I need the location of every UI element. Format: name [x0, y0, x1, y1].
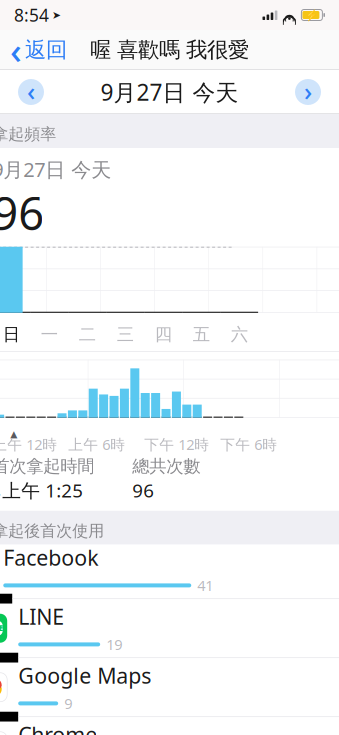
staticText: 拿起頻率 [0, 124, 56, 144]
staticText: 總共次數 [132, 456, 200, 477]
staticText: 二 [79, 324, 96, 345]
staticText: LINE [18, 602, 64, 631]
staticText: ➤ [52, 9, 61, 21]
staticText: › [304, 74, 312, 108]
staticText: 四 [155, 324, 172, 345]
button[interactable]: f [0, 545, 339, 604]
staticText: ⚡ [305, 9, 318, 21]
staticText: Chrome [18, 720, 97, 735]
staticText: 19 [106, 635, 122, 654]
staticText: 返回 [25, 37, 67, 63]
staticText: ▲ [10, 429, 17, 439]
button[interactable]: 前一天 [16, 77, 46, 107]
staticText: 9月27日 今天 [100, 77, 238, 107]
staticText: 8:54 [14, 3, 49, 26]
staticText: 喔 喜歡嗎 我很愛 [90, 37, 249, 63]
button[interactable]: LINE [0, 604, 339, 663]
staticText: 五 [193, 324, 210, 345]
staticText: 下午 12時 [144, 435, 209, 454]
staticText: 三 [117, 324, 134, 345]
button[interactable]: 後一天 [293, 77, 323, 107]
staticText: LINE [0, 623, 3, 633]
staticText: Google Maps [18, 661, 151, 690]
staticText: 上午 1:25 [2, 478, 83, 503]
staticText: 六 [231, 324, 248, 345]
staticText: 9 [64, 694, 72, 713]
staticText: 下午 6時 [220, 435, 277, 454]
staticText: ‹ [10, 26, 22, 74]
staticText: ‹ [27, 74, 35, 108]
staticText: Facebook [3, 543, 98, 572]
button[interactable]: Google Maps [0, 663, 339, 722]
staticText: 一 [41, 324, 58, 345]
button[interactable]: Chrome [0, 722, 339, 735]
staticText: 拿起後首次使用 [0, 521, 104, 541]
staticText: 首次拿起時間 [0, 456, 94, 477]
staticText: 9月27日 今天 [0, 156, 111, 183]
staticText: 96 [0, 183, 44, 243]
staticText: 上午 12時 [0, 435, 57, 454]
staticText: 日 [3, 324, 20, 345]
staticText: 上午 6時 [68, 435, 125, 454]
button[interactable]: ‹ [0, 30, 77, 70]
staticText: 41 [197, 576, 213, 595]
staticText: 96 [132, 478, 154, 503]
